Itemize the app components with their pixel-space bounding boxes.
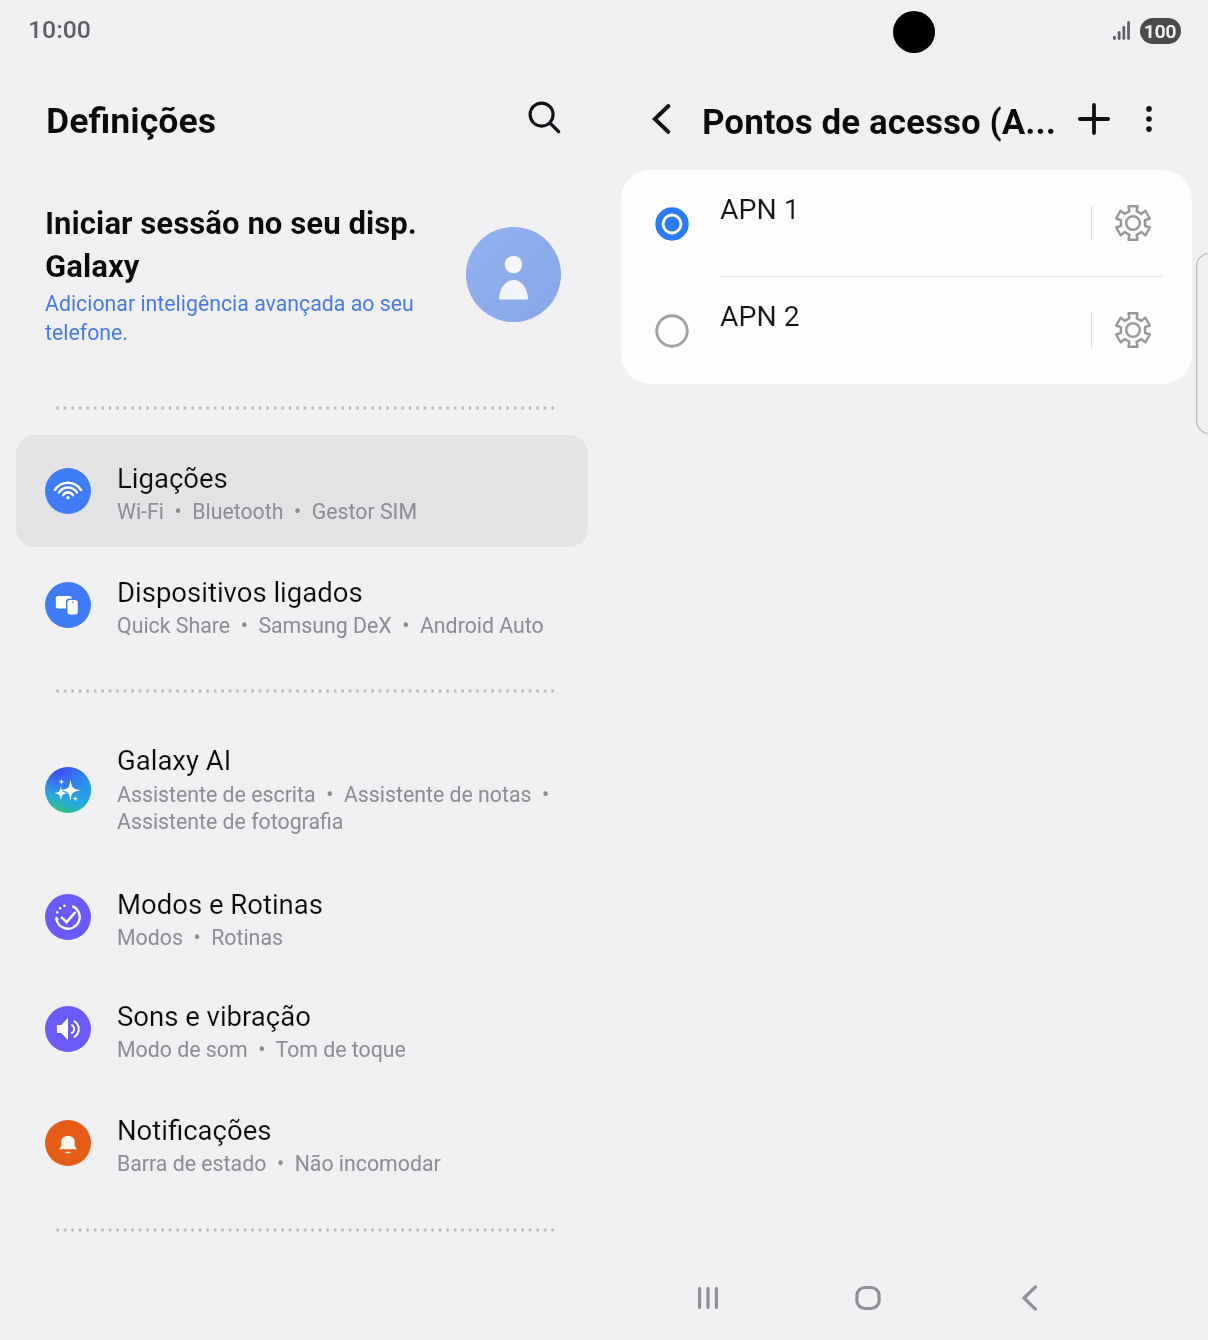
- button[interactable]: Notificações: [16, 1087, 588, 1199]
- staticText: APN 1: [720, 193, 800, 226]
- staticText: Assistente de fotografia: [117, 809, 344, 834]
- staticText: 100: [1144, 20, 1177, 42]
- button[interactable]: Recents: [666, 1260, 750, 1336]
- staticText: Sons e vibração: [117, 1000, 311, 1032]
- button[interactable]: Galaxy AI: [16, 734, 588, 846]
- button[interactable]: Home: [826, 1260, 910, 1336]
- staticText: Dispositivos ligados: [117, 576, 363, 608]
- staticText: Modos e Rotinas: [117, 888, 323, 920]
- button[interactable]: APN settings: [1098, 295, 1168, 365]
- staticText: 10:00: [28, 15, 91, 44]
- staticText: Quick Share • Samsung DeX • Android Auto: [117, 613, 544, 638]
- staticText: Ligações: [117, 462, 228, 494]
- button[interactable]: Search: [516, 90, 572, 146]
- staticText: APN 2: [720, 300, 800, 333]
- staticText: Galaxy AI: [117, 744, 232, 776]
- staticText: Definições: [46, 100, 217, 142]
- staticText: Iniciar sessão no seu disp.: [45, 205, 417, 242]
- button[interactable]: Add: [1068, 93, 1120, 145]
- staticText: Adicionar inteligência avançada ao seu: [45, 291, 414, 316]
- staticText: Assistente de escrita • Assistente de no…: [117, 782, 550, 807]
- staticText: Galaxy: [45, 248, 140, 285]
- button[interactable]: Dispositivos ligados: [16, 549, 588, 661]
- staticText: Modos • Rotinas: [117, 925, 283, 950]
- button[interactable]: Sons e vibração: [16, 973, 588, 1085]
- button[interactable]: Back: [988, 1260, 1072, 1336]
- button[interactable]: More options: [1123, 93, 1175, 145]
- button[interactable]: Modos e Rotinas: [16, 861, 588, 973]
- staticText: telefone.: [45, 320, 128, 345]
- staticText: Modo de som • Tom de toque: [117, 1037, 406, 1062]
- staticText: Barra de estado • Não incomodar: [117, 1151, 441, 1176]
- button[interactable]: APN settings: [1098, 188, 1168, 258]
- button[interactable]: APN 1: [621, 170, 1192, 277]
- staticText: Wi-Fi • Bluetooth • Gestor SIM: [117, 499, 417, 524]
- button[interactable]: Back: [636, 93, 688, 145]
- button[interactable]: Iniciar sessão no seu disp.: [16, 190, 588, 355]
- staticText: Notificações: [117, 1114, 272, 1146]
- button[interactable]: APN 2: [621, 277, 1192, 384]
- button[interactable]: Ligações: [16, 435, 588, 547]
- staticText: Pontos de acesso (A...: [702, 102, 1054, 143]
